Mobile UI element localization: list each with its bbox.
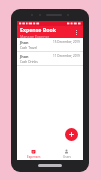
staticText: 11 December, 2019 bbox=[53, 54, 80, 58]
button[interactable]: More options bbox=[71, 27, 81, 37]
staticText: Cash Drinks bbox=[20, 60, 38, 63]
staticText: Jhon bbox=[20, 54, 29, 59]
staticText: Expenses bbox=[27, 155, 41, 159]
staticText: 15 December, 2019 bbox=[53, 40, 80, 44]
staticText: Expense Book bbox=[20, 26, 56, 33]
staticText: Jhon bbox=[20, 40, 29, 45]
button[interactable]: Jhon bbox=[17, 52, 83, 65]
staticText: Manage Expense bbox=[20, 34, 50, 38]
button[interactable]: Jhon bbox=[17, 38, 83, 51]
button[interactable]: Add expense bbox=[65, 128, 78, 141]
button[interactable]: Users bbox=[50, 147, 83, 160]
staticText: Users bbox=[63, 155, 71, 159]
staticText: Cash Travel bbox=[20, 46, 38, 49]
button[interactable]: Expenses bbox=[17, 147, 50, 160]
